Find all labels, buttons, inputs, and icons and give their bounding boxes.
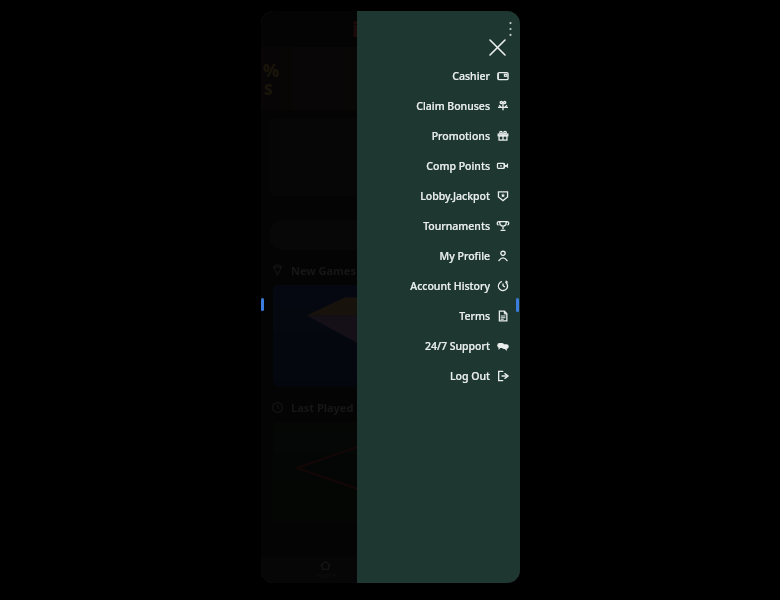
staticText: Last Played: [291, 400, 354, 415]
staticText: Cashier: [452, 69, 490, 83]
staticText: Tournaments: [423, 219, 490, 233]
button[interactable]: Account History: [357, 271, 520, 301]
button[interactable]: Promotions: [357, 121, 520, 151]
staticText: New Games: [291, 263, 356, 278]
button[interactable]: Claim Bonuses: [357, 91, 520, 121]
button[interactable]: New Games: [271, 261, 510, 279]
staticText: SPARKLING: [358, 349, 429, 365]
staticText: i: [352, 15, 359, 44]
staticText: Comp Points: [426, 159, 490, 173]
button[interactable]: Close menu: [484, 34, 510, 60]
staticText: $65.00 A: [479, 182, 516, 194]
button[interactable]: Home: [269, 220, 512, 250]
staticText: Terms: [459, 309, 490, 323]
staticText: 24/7 Support: [424, 339, 490, 353]
button[interactable]: Tournaments: [357, 211, 520, 241]
button[interactable]: Comp Points: [357, 151, 520, 181]
staticText: Log Out: [449, 369, 490, 383]
staticText: S: [264, 79, 273, 99]
button[interactable]: Last Played: [271, 398, 510, 416]
button[interactable]: Home: [261, 557, 390, 583]
staticText: Lobby.Jackpot: [420, 189, 490, 203]
staticText: My Profile: [439, 249, 490, 263]
button[interactable]: 24/7 Support: [357, 331, 520, 361]
button[interactable]: Terms: [357, 301, 520, 331]
staticText: Promotions: [431, 129, 490, 143]
staticText: Claim Bonuses: [416, 99, 490, 113]
staticText: %: [263, 59, 280, 82]
button[interactable]: Se: [390, 557, 520, 583]
button[interactable]: My Profile: [357, 241, 520, 271]
button[interactable]: 32: [273, 422, 514, 524]
button[interactable]: Lobby.Jackpot: [357, 181, 520, 211]
button[interactable]: Cashier: [357, 61, 520, 91]
button[interactable]: Log Out: [357, 361, 520, 391]
button[interactable]: SPARKLING: [273, 285, 514, 387]
staticText: Account History: [410, 279, 490, 293]
